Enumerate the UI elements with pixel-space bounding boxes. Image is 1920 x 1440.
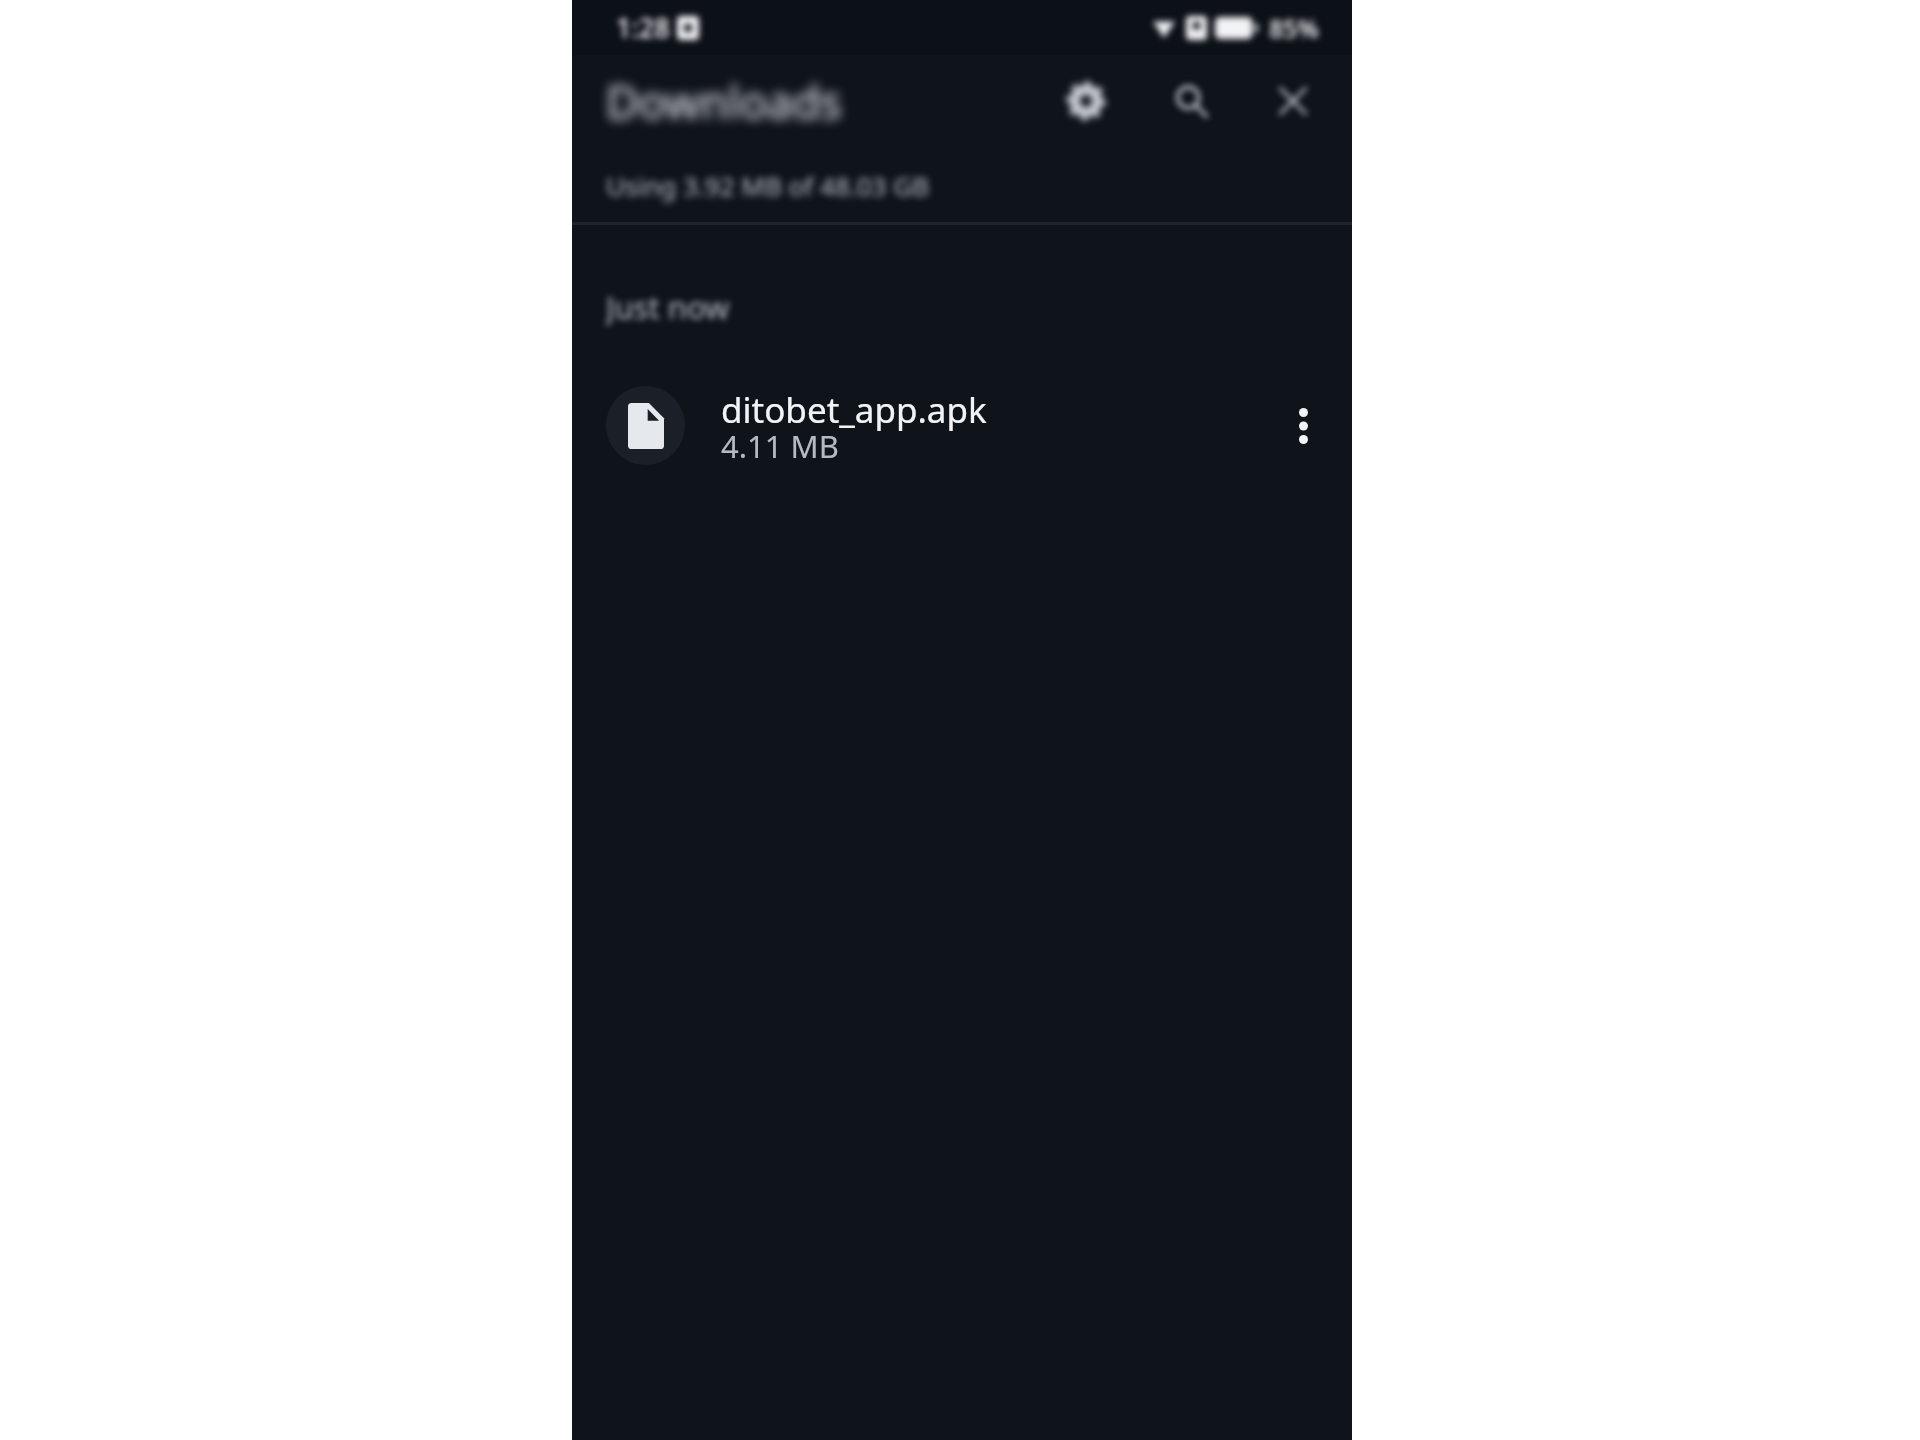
- button[interactable]: Settings: [1057, 72, 1115, 130]
- staticText: 1:28: [616, 9, 670, 46]
- staticText: ditobet_app.apk: [721, 386, 987, 434]
- staticText: Downloads: [606, 71, 842, 132]
- button[interactable]: ditobet_app.apk: [572, 372, 1352, 479]
- staticText: 4.11 MB: [721, 425, 839, 467]
- button[interactable]: More options: [1267, 390, 1339, 462]
- button[interactable]: Search: [1162, 72, 1220, 130]
- staticText: Using 3.92 MB of 48.03 GB: [606, 168, 930, 203]
- staticText: 85%: [1269, 11, 1319, 45]
- button[interactable]: Close: [1264, 72, 1322, 130]
- staticText: Just now: [606, 286, 730, 328]
